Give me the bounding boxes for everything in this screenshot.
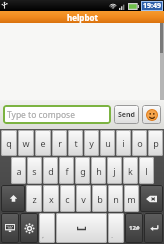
- button[interactable]: Shift: [1, 185, 25, 212]
- button[interactable]: o: [132, 130, 147, 156]
- button[interactable]: t: [68, 130, 83, 156]
- staticText: b: [97, 193, 103, 205]
- button[interactable]: c: [60, 185, 75, 212]
- button[interactable]: Numbers and symbols: [125, 213, 143, 243]
- button[interactable]: q: [1, 130, 17, 156]
- staticText: r: [58, 137, 62, 149]
- staticText: t: [74, 137, 78, 149]
- staticText: y: [89, 137, 94, 149]
- button[interactable]: k: [123, 157, 138, 184]
- staticText: z: [32, 193, 37, 205]
- button[interactable]: e: [35, 130, 51, 156]
- staticText: s: [32, 165, 37, 177]
- staticText: i: [122, 137, 125, 149]
- staticText: q: [6, 137, 12, 149]
- staticText: Type to compose: [7, 109, 75, 121]
- staticText: v: [81, 193, 86, 205]
- staticText: u: [105, 137, 111, 149]
- button[interactable]: h: [91, 157, 106, 184]
- staticText: p: [153, 137, 159, 149]
- button[interactable]: m: [124, 185, 139, 212]
- button[interactable]: u: [100, 130, 115, 156]
- button[interactable]: p: [148, 130, 163, 156]
- staticText: helpbot: [67, 12, 98, 23]
- staticText: n: [113, 193, 119, 205]
- staticText: Send: [118, 110, 136, 120]
- staticText: k: [128, 165, 133, 177]
- staticText: h: [96, 165, 102, 177]
- button[interactable]: y: [84, 130, 99, 156]
- button[interactable]: Send: [114, 105, 139, 124]
- button[interactable]: Backspace: [140, 185, 163, 212]
- button[interactable]: .: [108, 213, 124, 243]
- staticText: g: [80, 165, 86, 177]
- staticText: d: [48, 165, 54, 177]
- button[interactable]: [56, 213, 107, 243]
- button[interactable]: d: [43, 157, 58, 184]
- staticText: f: [65, 165, 69, 177]
- staticText: 19:49: [143, 1, 161, 11]
- staticText: w: [22, 137, 30, 149]
- button[interactable]: l: [139, 157, 154, 184]
- button[interactable]: g: [75, 157, 90, 184]
- button[interactable]: f: [59, 157, 74, 184]
- staticText: m: [127, 193, 136, 205]
- staticText: x: [49, 193, 54, 205]
- button[interactable]: j: [107, 157, 122, 184]
- button[interactable]: Switch keyboard: [1, 213, 19, 243]
- staticText: e: [40, 137, 46, 149]
- staticText: .: [111, 232, 113, 240]
- staticText: o: [137, 137, 143, 149]
- staticText: a: [16, 165, 22, 177]
- button[interactable]: v: [76, 185, 91, 212]
- staticText: ,: [42, 232, 44, 240]
- button[interactable]: b: [92, 185, 107, 212]
- staticText: l: [145, 165, 148, 177]
- button[interactable]: Type to compose: [3, 105, 111, 124]
- button[interactable]: r: [52, 130, 67, 156]
- button[interactable]: n: [108, 185, 123, 212]
- staticText: 12#: [129, 224, 140, 232]
- button[interactable]: w: [18, 130, 34, 156]
- staticText: c: [65, 193, 70, 205]
- button[interactable]: Insert emoji: [142, 105, 161, 124]
- button[interactable]: Enter: [144, 213, 163, 243]
- button[interactable]: Settings: [20, 213, 38, 243]
- button[interactable]: ,: [39, 213, 55, 243]
- button[interactable]: x: [43, 185, 59, 212]
- button[interactable]: i: [116, 130, 131, 156]
- staticText: j: [113, 165, 116, 177]
- button[interactable]: s: [27, 157, 42, 184]
- button[interactable]: z: [26, 185, 42, 212]
- button[interactable]: a: [11, 157, 26, 184]
